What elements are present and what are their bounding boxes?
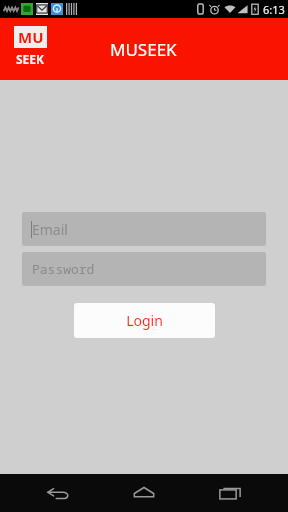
button[interactable]: Login — [74, 303, 215, 338]
staticText: 6:13 — [263, 2, 285, 17]
button[interactable]: Back — [30, 474, 86, 512]
button[interactable]: Email — [22, 212, 266, 246]
button[interactable]: Password — [22, 252, 266, 286]
staticText: Password — [32, 260, 95, 278]
staticText: SEEK — [16, 51, 45, 67]
button[interactable]: Recent apps — [202, 474, 258, 512]
staticText: MU — [18, 27, 44, 47]
button[interactable]: Home — [116, 474, 172, 512]
staticText: Email — [32, 220, 68, 239]
button[interactable]: Museek logo — [14, 26, 47, 70]
staticText: MUSEEK — [110, 38, 177, 61]
staticText: Login — [126, 311, 163, 330]
